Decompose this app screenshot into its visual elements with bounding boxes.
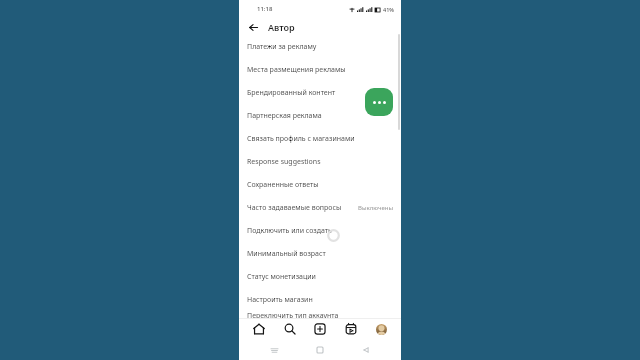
staticText: Подключить или создать bbox=[247, 226, 393, 236]
button[interactable]: Reels bbox=[337, 318, 365, 340]
button[interactable]: Back bbox=[246, 20, 260, 34]
button[interactable]: Search bbox=[276, 318, 304, 340]
button[interactable]: Home bbox=[309, 340, 331, 360]
button[interactable]: Сохраненные ответы bbox=[239, 173, 401, 196]
button[interactable]: Настроить магазин bbox=[239, 288, 401, 311]
button[interactable]: Подключить или создать bbox=[239, 219, 401, 242]
staticText: Переключить тип аккаунта bbox=[247, 311, 393, 318]
staticText: Настроить магазин bbox=[247, 295, 393, 305]
staticText: Платежи за рекламу bbox=[247, 42, 393, 52]
staticText: Брендированный контент bbox=[247, 88, 393, 98]
button[interactable]: Места размещения рекламы bbox=[239, 58, 401, 81]
staticText: Минимальный возраст bbox=[247, 249, 393, 259]
button[interactable]: Recents bbox=[263, 340, 285, 360]
staticText: Выключены bbox=[358, 204, 393, 212]
button[interactable]: Переключить тип аккаунта bbox=[239, 311, 401, 318]
button[interactable]: Response suggestions bbox=[239, 150, 401, 173]
button[interactable]: Home bbox=[245, 318, 273, 340]
button[interactable]: Минимальный возраст bbox=[239, 242, 401, 265]
button[interactable]: Брендированный контент bbox=[239, 81, 401, 104]
staticText: Часто задаваемые вопросы bbox=[247, 203, 358, 213]
button[interactable]: Связать профиль с магазинами bbox=[239, 127, 401, 150]
staticText: Автор bbox=[268, 21, 295, 33]
staticText: Сохраненные ответы bbox=[247, 180, 393, 190]
button[interactable]: Статус монетизации bbox=[239, 265, 401, 288]
button[interactable]: Партнерская реклама bbox=[239, 104, 401, 127]
button[interactable]: Create bbox=[306, 318, 334, 340]
staticText: Статус монетизации bbox=[247, 272, 393, 282]
staticText: Response suggestions bbox=[247, 157, 393, 167]
button[interactable]: Profile bbox=[367, 318, 395, 340]
staticText: Связать профиль с магазинами bbox=[247, 134, 393, 144]
staticText: 11:18 bbox=[257, 5, 273, 13]
button[interactable]: Платежи за рекламу bbox=[239, 35, 401, 58]
button[interactable]: Back bbox=[355, 340, 377, 360]
button[interactable]: Часто задаваемые вопросы bbox=[239, 196, 401, 219]
staticText: 41% bbox=[383, 6, 394, 13]
staticText: Партнерская реклама bbox=[247, 111, 393, 121]
staticText: Места размещения рекламы bbox=[247, 65, 393, 75]
button[interactable]: More options bbox=[365, 88, 393, 116]
